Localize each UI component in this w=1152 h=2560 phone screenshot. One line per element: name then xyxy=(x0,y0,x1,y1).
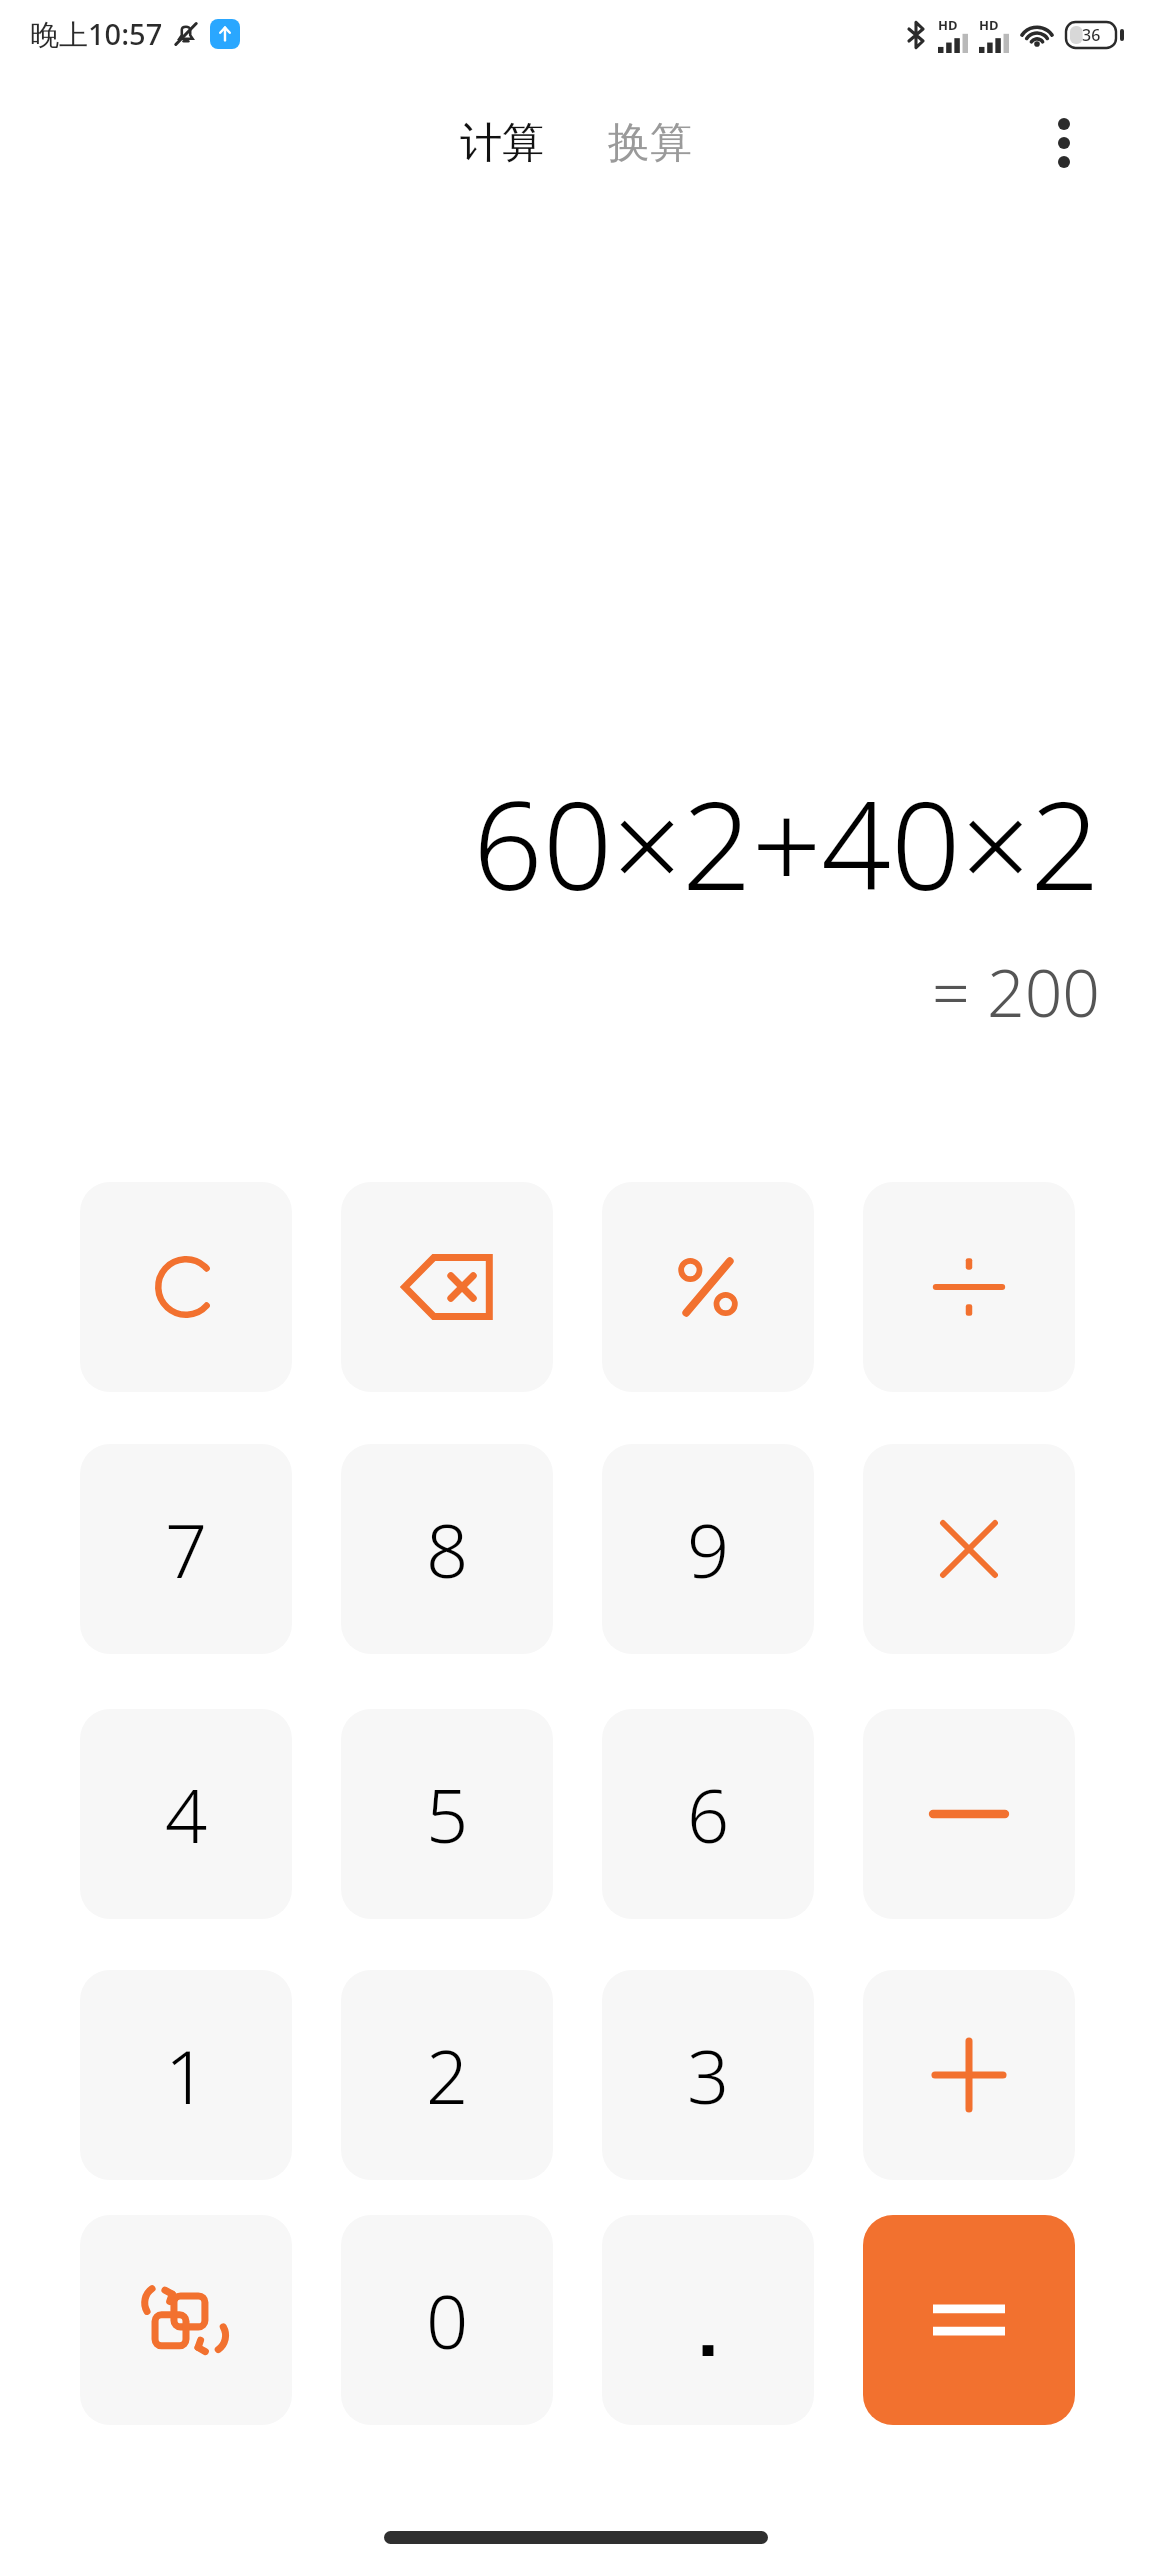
button[interactable]: Minus xyxy=(863,1709,1075,1919)
staticText: 0 xyxy=(426,2270,469,2371)
staticText: HD xyxy=(979,16,999,34)
button[interactable]: 8 xyxy=(341,1444,553,1654)
button[interactable]: 3 xyxy=(602,1970,814,2180)
staticText: = 200 xyxy=(932,946,1100,1036)
staticText: 换算 xyxy=(608,117,692,170)
button[interactable]: Plus xyxy=(863,1970,1075,2180)
button[interactable]: Clear xyxy=(80,1182,292,1392)
button[interactable]: 0 xyxy=(341,2215,553,2425)
staticText: 4 xyxy=(165,1764,208,1865)
staticText: 60×2+40×2 xyxy=(473,760,1100,926)
staticText: 9 xyxy=(687,1499,730,1600)
button[interactable]: 2 xyxy=(341,1970,553,2180)
staticText: 计算 xyxy=(460,117,544,170)
staticText: 晚上10:57 xyxy=(30,14,163,54)
button[interactable]: 1 xyxy=(80,1970,292,2180)
button[interactable]: Decimal point xyxy=(602,2215,814,2425)
button[interactable]: Percent xyxy=(602,1182,814,1392)
staticText: 2 xyxy=(426,2025,469,2126)
button[interactable]: 换算 xyxy=(594,107,706,180)
staticText: 1 xyxy=(165,2025,208,2126)
button[interactable]: 6 xyxy=(602,1709,814,1919)
staticText: 6 xyxy=(687,1764,730,1865)
button[interactable]: 计算 xyxy=(446,107,558,180)
staticText: 8 xyxy=(426,1499,469,1600)
button[interactable]: Unit conversion xyxy=(80,2215,292,2425)
button[interactable]: Equals xyxy=(863,2215,1075,2425)
button[interactable]: 4 xyxy=(80,1709,292,1919)
button[interactable]: Multiply xyxy=(863,1444,1075,1654)
staticText: 3 xyxy=(687,2025,730,2126)
staticText: HD xyxy=(938,16,958,34)
staticText: 36 xyxy=(1082,24,1101,46)
button[interactable]: 7 xyxy=(80,1444,292,1654)
staticText: 7 xyxy=(165,1499,208,1600)
button[interactable]: More options xyxy=(1028,107,1100,179)
button[interactable]: 9 xyxy=(602,1444,814,1654)
button[interactable]: Backspace xyxy=(341,1182,553,1392)
button[interactable]: Divide xyxy=(863,1182,1075,1392)
staticText: 5 xyxy=(426,1764,469,1865)
button[interactable]: 5 xyxy=(341,1709,553,1919)
